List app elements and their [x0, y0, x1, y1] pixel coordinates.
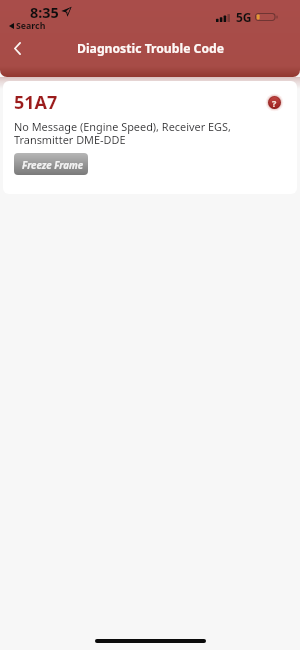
staticText: Freeze Frame: [22, 159, 84, 172]
button[interactable]: Help: [264, 92, 285, 113]
staticText: No Message (Engine Speed), Receiver EGS,…: [14, 119, 246, 148]
staticText: 8:35: [30, 3, 59, 23]
staticText: ?: [272, 97, 277, 109]
staticText: Search: [16, 20, 46, 32]
staticText: Diagnostic Trouble Code: [77, 40, 224, 57]
button[interactable]: Freeze Frame: [14, 153, 88, 175]
button[interactable]: Back: [3, 34, 31, 62]
staticText: 51A7: [14, 90, 58, 115]
staticText: 5G: [236, 9, 252, 25]
